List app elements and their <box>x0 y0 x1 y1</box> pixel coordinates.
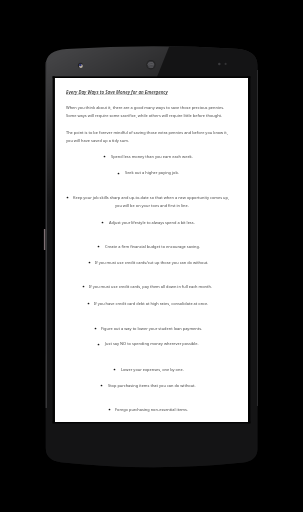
staticText: you will be on your toes and first in li… <box>115 203 205 208</box>
staticText: If you have credit card debt at high rat… <box>94 301 234 306</box>
staticText: The point is to be forever mindful of sa… <box>66 130 241 135</box>
staticText: Forego purchasing non-essential items. <box>115 407 215 412</box>
staticText: Lower your expenses, one by one. <box>121 367 211 372</box>
staticText: Just say NO to spending money wherever p… <box>105 341 230 346</box>
staticText: Stop purchasing items that you can do wi… <box>108 383 223 388</box>
staticText: Spend less money than you earn each week… <box>111 154 221 159</box>
staticText: Every Day Ways to Save Money for an Emer… <box>66 89 241 95</box>
staticText: Create a firm financial budget to encour… <box>105 244 225 249</box>
staticText: Keep your job skills sharp and up-to-dat… <box>73 195 248 200</box>
staticText: you will have saved up a tidy sum. <box>66 138 241 143</box>
staticText: When you think about it, there are a goo… <box>66 105 241 110</box>
staticText: If you must use credit cards, pay them a… <box>89 284 239 289</box>
staticText: Seek out a higher paying job. <box>125 170 205 175</box>
staticText: Figure out a way to lower your student l… <box>101 326 231 331</box>
staticText: If you must use credit cards/cut up thos… <box>95 260 235 265</box>
staticText: Some ways will require some sacrifice, w… <box>66 113 241 118</box>
staticText: Adjust your lifestyle to always spend a … <box>109 220 219 225</box>
